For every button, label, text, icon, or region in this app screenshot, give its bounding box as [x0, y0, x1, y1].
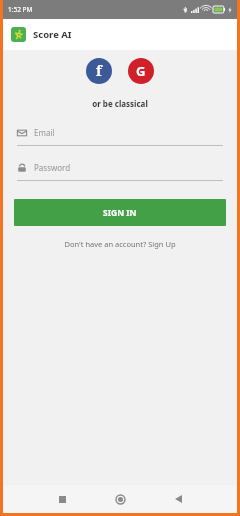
button[interactable]: Sign in with Google — [128, 58, 154, 84]
staticText: or be classical — [3, 98, 237, 109]
staticText: G — [136, 62, 146, 80]
button[interactable]: Password — [17, 162, 223, 181]
button[interactable]: SIGN IN — [14, 199, 226, 226]
button[interactable]: Home — [91, 485, 149, 513]
staticText: f — [96, 61, 102, 80]
staticText: Score AI — [33, 28, 72, 41]
button[interactable]: Recent apps — [33, 485, 91, 513]
staticText: Password — [34, 162, 71, 173]
button[interactable]: Email — [17, 127, 223, 146]
button[interactable]: Sign in with Facebook — [86, 58, 112, 84]
staticText: 1:52 PM — [8, 5, 33, 14]
staticText: Email — [34, 127, 55, 138]
button[interactable]: Don't have an account? Sign Up — [3, 239, 237, 249]
button[interactable]: Back — [149, 485, 207, 513]
staticText: SIGN IN — [103, 207, 137, 219]
